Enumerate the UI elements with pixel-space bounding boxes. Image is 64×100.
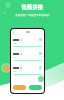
button[interactable]: Record <box>13 85 26 90</box>
staticText: 音频拼接 <box>21 4 43 11</box>
button[interactable]: Add audio <box>38 76 44 82</box>
staticText: 多段音频一键拼接·支持多格式 <box>15 13 50 17</box>
button[interactable]: Merge <box>29 85 42 90</box>
button[interactable] <box>13 52 42 61</box>
button[interactable] <box>13 38 42 47</box>
button[interactable] <box>13 66 42 75</box>
button[interactable]: Back <box>12 31 15 34</box>
